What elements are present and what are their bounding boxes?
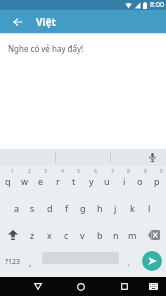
staticText: 3 bbox=[44, 168, 47, 175]
button[interactable]: t bbox=[66, 167, 82, 194]
staticText: b bbox=[97, 229, 103, 241]
staticText: d bbox=[47, 202, 53, 214]
staticText: x bbox=[47, 229, 52, 241]
staticText: j bbox=[114, 202, 117, 214]
staticText: m bbox=[128, 229, 137, 241]
staticText: 5 bbox=[77, 168, 80, 175]
button[interactable]: e bbox=[33, 167, 49, 194]
button[interactable] bbox=[28, 277, 47, 296]
staticText: q bbox=[5, 175, 11, 187]
staticText: g bbox=[80, 202, 86, 214]
button[interactable]: h bbox=[91, 194, 108, 221]
staticText: 1 bbox=[11, 168, 14, 175]
button[interactable]: u bbox=[99, 167, 115, 194]
staticText: n bbox=[113, 229, 119, 241]
button[interactable]: x bbox=[41, 221, 58, 248]
button[interactable]: j bbox=[107, 194, 124, 221]
staticText: 2 bbox=[28, 168, 31, 175]
button[interactable]: ?123 bbox=[0, 248, 25, 275]
button[interactable]: z bbox=[24, 221, 41, 248]
staticText: l bbox=[148, 202, 151, 214]
button[interactable]: s bbox=[24, 194, 41, 221]
staticText: 7 bbox=[111, 168, 114, 175]
button[interactable]: p bbox=[149, 167, 165, 194]
button[interactable]: d bbox=[41, 194, 58, 221]
button[interactable]: k bbox=[124, 194, 141, 221]
button[interactable]: r bbox=[50, 167, 66, 194]
button[interactable] bbox=[8, 10, 28, 33]
button[interactable]: v bbox=[74, 221, 91, 248]
button[interactable] bbox=[142, 251, 162, 271]
staticText: Việt bbox=[36, 15, 56, 29]
button[interactable]: a bbox=[8, 194, 25, 221]
staticText: 8:00 bbox=[150, 0, 164, 10]
staticText: p bbox=[154, 175, 160, 187]
staticText: i bbox=[123, 175, 126, 187]
staticText: e bbox=[38, 175, 44, 187]
button[interactable]: y bbox=[83, 167, 99, 194]
staticText: t bbox=[72, 175, 76, 187]
staticText: 8 bbox=[127, 168, 130, 175]
button[interactable]: g bbox=[74, 194, 91, 221]
staticText: z bbox=[30, 229, 35, 241]
staticText: y bbox=[89, 175, 94, 187]
button[interactable] bbox=[144, 277, 163, 296]
staticText: h bbox=[97, 202, 103, 214]
button[interactable]: l bbox=[141, 194, 158, 221]
staticText: c bbox=[64, 229, 69, 241]
staticText: a bbox=[14, 202, 20, 214]
button[interactable] bbox=[144, 149, 161, 166]
button[interactable] bbox=[0, 149, 166, 166]
button[interactable]: w bbox=[17, 167, 33, 194]
staticText: 0 bbox=[160, 168, 163, 175]
button[interactable]: . bbox=[120, 248, 136, 275]
staticText: w bbox=[21, 175, 29, 187]
staticText: u bbox=[104, 175, 110, 187]
button[interactable]: f bbox=[58, 194, 75, 221]
button[interactable] bbox=[141, 221, 166, 248]
button[interactable] bbox=[0, 221, 25, 248]
staticText: f bbox=[65, 202, 69, 214]
staticText: s bbox=[30, 202, 35, 214]
staticText: 6 bbox=[94, 168, 97, 175]
button[interactable] bbox=[115, 277, 134, 296]
button[interactable]: n bbox=[107, 221, 124, 248]
button[interactable]: b bbox=[91, 221, 108, 248]
staticText: , bbox=[29, 256, 32, 268]
staticText: . bbox=[127, 256, 130, 268]
button[interactable]: c bbox=[58, 221, 75, 248]
staticText: r bbox=[56, 175, 60, 187]
button[interactable]: i bbox=[116, 167, 132, 194]
staticText: v bbox=[80, 229, 85, 241]
staticText: ?123 bbox=[5, 257, 21, 267]
staticText: Nghe có vẻ hay đấy! bbox=[8, 43, 84, 54]
staticText: k bbox=[130, 202, 135, 214]
staticText: 4 bbox=[61, 168, 64, 175]
button[interactable]: o bbox=[132, 167, 148, 194]
staticText: 9 bbox=[144, 168, 147, 175]
button[interactable] bbox=[71, 277, 90, 296]
button[interactable]: q bbox=[0, 167, 16, 194]
button[interactable]: m bbox=[124, 221, 141, 248]
button[interactable]: , bbox=[22, 248, 38, 275]
staticText: o bbox=[137, 175, 143, 187]
